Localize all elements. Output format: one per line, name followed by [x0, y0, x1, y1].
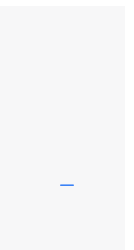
- button[interactable]: Continue: [60, 184, 74, 186]
